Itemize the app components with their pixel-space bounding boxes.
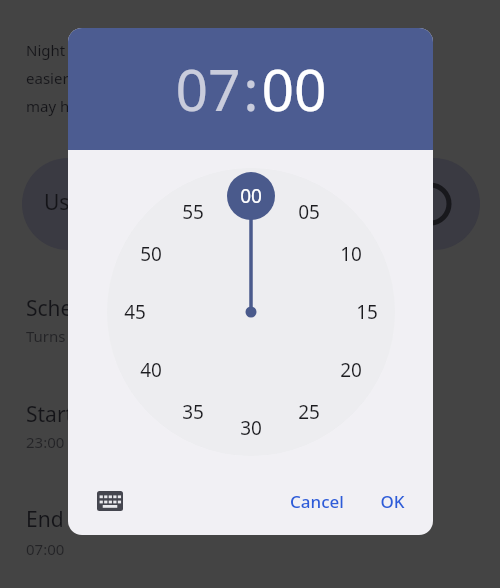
staticText: 00 (261, 50, 327, 128)
staticText: 30 (240, 415, 262, 441)
staticText: Night Light tints your screen amber. Thi… (26, 40, 396, 60)
staticText: OK (380, 490, 405, 513)
staticText: 20 (340, 357, 362, 383)
staticText: End time (26, 505, 114, 534)
staticText: 15 (356, 299, 378, 325)
button[interactable]: Switch to text input (90, 481, 130, 521)
staticText: Start time (26, 400, 124, 429)
staticText: Cancel (290, 490, 344, 513)
staticText: 00 (240, 183, 262, 209)
button[interactable]: Cancel (276, 482, 358, 521)
staticText: Use Night Light (44, 188, 197, 217)
staticText: 07 (175, 50, 241, 128)
staticText: 35 (182, 399, 204, 425)
staticText: 23:00 (26, 432, 65, 452)
staticText: easier to look at your screen or read in… (26, 68, 399, 88)
button[interactable]: Clock dial, minutes (107, 168, 395, 456)
staticText: : (243, 50, 259, 128)
staticText: 55 (182, 199, 204, 225)
button[interactable]: 07 (175, 50, 241, 128)
button[interactable]: OK (366, 482, 419, 521)
staticText: 07:00 (26, 539, 65, 559)
button[interactable] (22, 158, 480, 250)
staticText: 50 (140, 241, 162, 267)
staticText: 40 (140, 357, 162, 383)
button[interactable]: 00 (261, 50, 327, 128)
staticText: 45 (124, 299, 146, 325)
staticText: Schedule (26, 294, 116, 323)
staticText: 25 (298, 399, 320, 425)
staticText: Turns on at custom time (26, 326, 198, 346)
staticText: 05 (298, 199, 320, 225)
staticText: 10 (340, 241, 362, 267)
staticText: may help you fall asleep more easily. (26, 96, 284, 116)
